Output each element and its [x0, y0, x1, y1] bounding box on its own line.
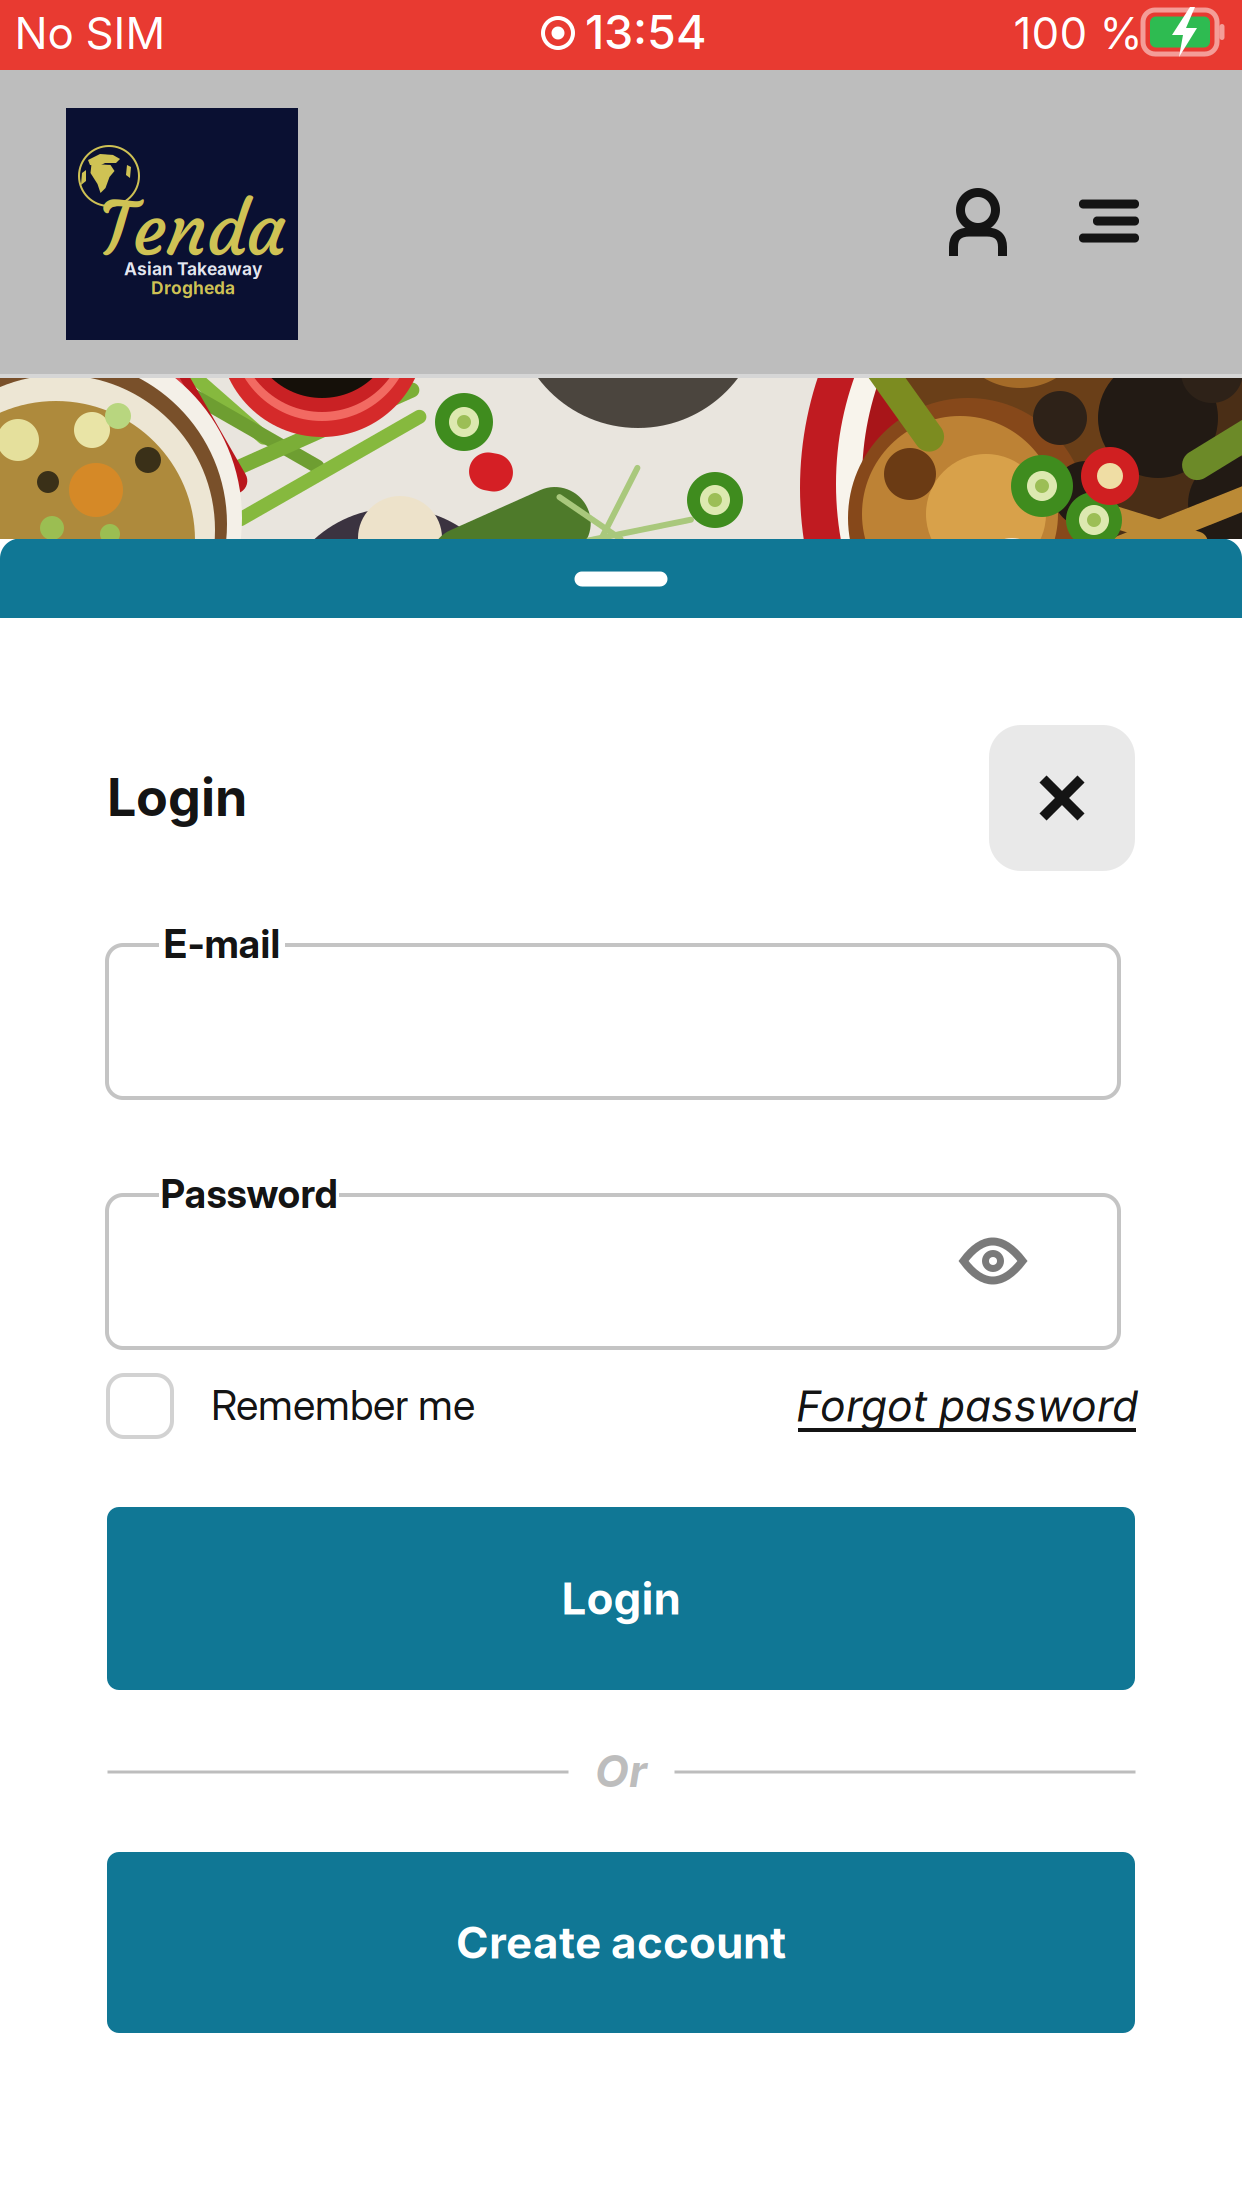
staticText: 100 % [1013, 6, 1142, 60]
staticText: Login [107, 765, 247, 828]
staticText: E-mail [163, 921, 280, 967]
staticText: Tenda [98, 185, 285, 275]
staticText: Or [595, 1744, 647, 1798]
button[interactable]: Login [107, 1507, 1135, 1690]
button[interactable]: Create account [107, 1852, 1135, 2033]
staticText: Forgot password [796, 1380, 1138, 1432]
staticText: Password [160, 1171, 337, 1217]
staticText: Create account [456, 1916, 786, 1969]
staticText: Login [561, 1572, 680, 1625]
staticText: 13:54 [585, 4, 707, 60]
button[interactable]: Remember me [107, 1374, 487, 1438]
staticText: Drogheda [151, 277, 235, 298]
button[interactable]: Menu [1066, 175, 1152, 267]
staticText: Remember me [211, 1380, 475, 1430]
button[interactable]: Forgot password [797, 1382, 1137, 1442]
button[interactable]: Account [935, 177, 1021, 277]
button[interactable]: Close [989, 725, 1135, 871]
staticText: Asian Takeaway [124, 258, 262, 279]
staticText: No SIM [14, 6, 165, 60]
